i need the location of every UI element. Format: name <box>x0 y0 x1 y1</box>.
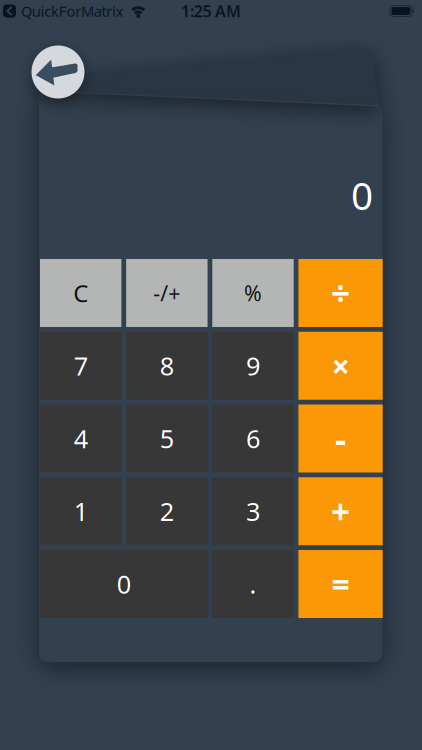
button[interactable]: Back to QuickForMatrix <box>3 1 124 21</box>
button[interactable]: Back <box>31 45 84 98</box>
button[interactable]: 7 <box>40 332 121 400</box>
button[interactable]: 3 <box>212 477 294 545</box>
button[interactable]: . <box>212 550 294 618</box>
staticText: . <box>249 567 256 601</box>
staticText: 0 <box>351 169 373 221</box>
staticText: × <box>332 344 350 387</box>
staticText: 3 <box>246 494 260 528</box>
button[interactable]: 2 <box>126 477 208 545</box>
button[interactable]: × <box>298 332 383 400</box>
staticText: QuickForMatrix <box>21 1 124 21</box>
staticText: % <box>244 279 262 307</box>
staticText: -/+ <box>153 279 180 307</box>
button[interactable]: 5 <box>126 404 208 472</box>
staticText: C <box>73 277 88 309</box>
staticText: 0 <box>117 567 131 601</box>
staticText: 9 <box>246 349 260 382</box>
staticText: 1 <box>74 494 88 528</box>
button[interactable]: 8 <box>126 332 208 400</box>
staticText: 7 <box>74 349 88 382</box>
staticText: 1:25 AM <box>181 0 241 22</box>
button[interactable]: = <box>298 550 383 618</box>
staticText: + <box>331 489 350 533</box>
button[interactable]: 0 <box>40 550 208 618</box>
button[interactable]: 4 <box>40 404 121 472</box>
staticText: 4 <box>74 422 88 455</box>
button[interactable]: C <box>40 259 121 327</box>
staticText: 2 <box>160 494 174 528</box>
staticText: 5 <box>160 422 174 455</box>
button[interactable]: -/+ <box>126 259 208 327</box>
staticText: 8 <box>160 349 174 382</box>
button[interactable]: ÷ <box>298 259 383 327</box>
staticText: = <box>332 563 350 605</box>
button[interactable]: 1 <box>40 477 121 545</box>
button[interactable]: 9 <box>212 332 294 400</box>
staticText: 6 <box>246 422 260 455</box>
button[interactable]: - <box>298 404 383 472</box>
button[interactable]: + <box>298 477 383 545</box>
button[interactable]: % <box>212 259 294 327</box>
staticText: - <box>335 415 346 461</box>
button[interactable]: 6 <box>212 404 294 472</box>
staticText: ÷ <box>331 271 350 315</box>
